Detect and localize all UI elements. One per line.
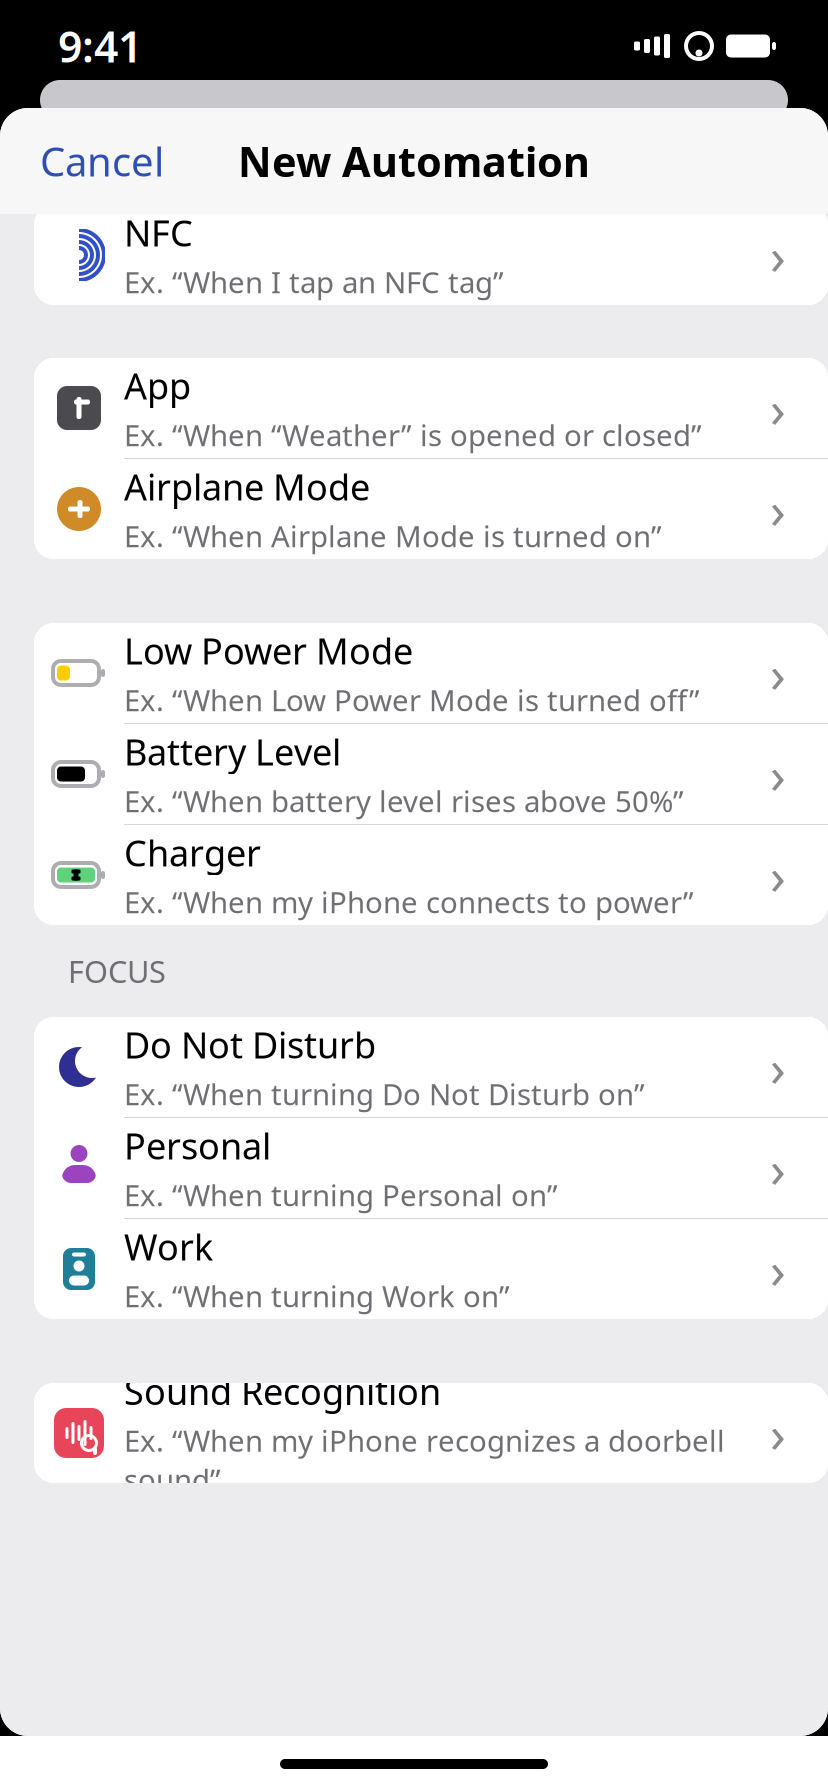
staticText: › [770, 1235, 786, 1303]
staticText: Do Not Disturb [124, 1021, 376, 1068]
staticText: Sound Recognition [124, 1367, 441, 1415]
staticText: › [770, 475, 786, 543]
staticText: Work [124, 1223, 213, 1270]
staticText: Ex. “When battery level rises above 50%” [124, 781, 684, 820]
staticText: App [124, 362, 191, 409]
staticText: Ex. “When turning Do Not Disturb on” [124, 1074, 645, 1113]
staticText: Ex. “When Low Power Mode is turned off” [124, 680, 700, 719]
staticText: Battery Level [124, 728, 341, 775]
staticText: NFC [124, 209, 193, 256]
staticText: Ex. “When Airplane Mode is turned on” [124, 516, 662, 555]
staticText: Ex. “When “Weather” is opened or closed” [124, 415, 702, 454]
button[interactable]: Personal [34, 1118, 828, 1219]
button[interactable]: Sound Recognition [34, 1383, 828, 1483]
button[interactable]: Low Power Mode [34, 623, 828, 724]
staticText: Personal [124, 1122, 271, 1169]
button[interactable]: Airplane Mode [34, 459, 828, 559]
staticText: › [770, 1033, 786, 1101]
button[interactable]: Charger [34, 825, 828, 925]
staticText: › [770, 841, 786, 909]
staticText: › [770, 1399, 786, 1467]
staticText: New Automation [238, 134, 590, 188]
staticText: Airplane Mode [124, 463, 370, 510]
button[interactable]: App [34, 358, 828, 459]
staticText: Charger [124, 829, 261, 876]
staticText: › [770, 1134, 786, 1202]
button[interactable]: NFC [34, 205, 828, 305]
button[interactable]: Battery Level [34, 724, 828, 825]
staticText: › [770, 374, 786, 442]
staticText: Low Power Mode [124, 627, 413, 674]
staticText: 9:41 [58, 18, 142, 74]
staticText: › [770, 221, 786, 289]
staticText: Ex. “When turning Work on” [124, 1276, 510, 1315]
staticText: Ex. “When I tap an NFC tag” [124, 262, 504, 301]
staticText: Ex. “When my iPhone recognizes a doorbel… [124, 1421, 725, 1499]
button[interactable]: Work [34, 1219, 828, 1319]
staticText: Ex. “When turning Personal on” [124, 1175, 558, 1214]
button[interactable]: Do Not Disturb [34, 1017, 828, 1118]
staticText: FOCUS [68, 951, 166, 991]
staticText: Cancel [40, 134, 164, 187]
staticText: Ex. “When my iPhone connects to power” [124, 882, 694, 921]
button[interactable]: Cancel [0, 120, 184, 201]
staticText: › [770, 639, 786, 707]
staticText: › [770, 740, 786, 808]
